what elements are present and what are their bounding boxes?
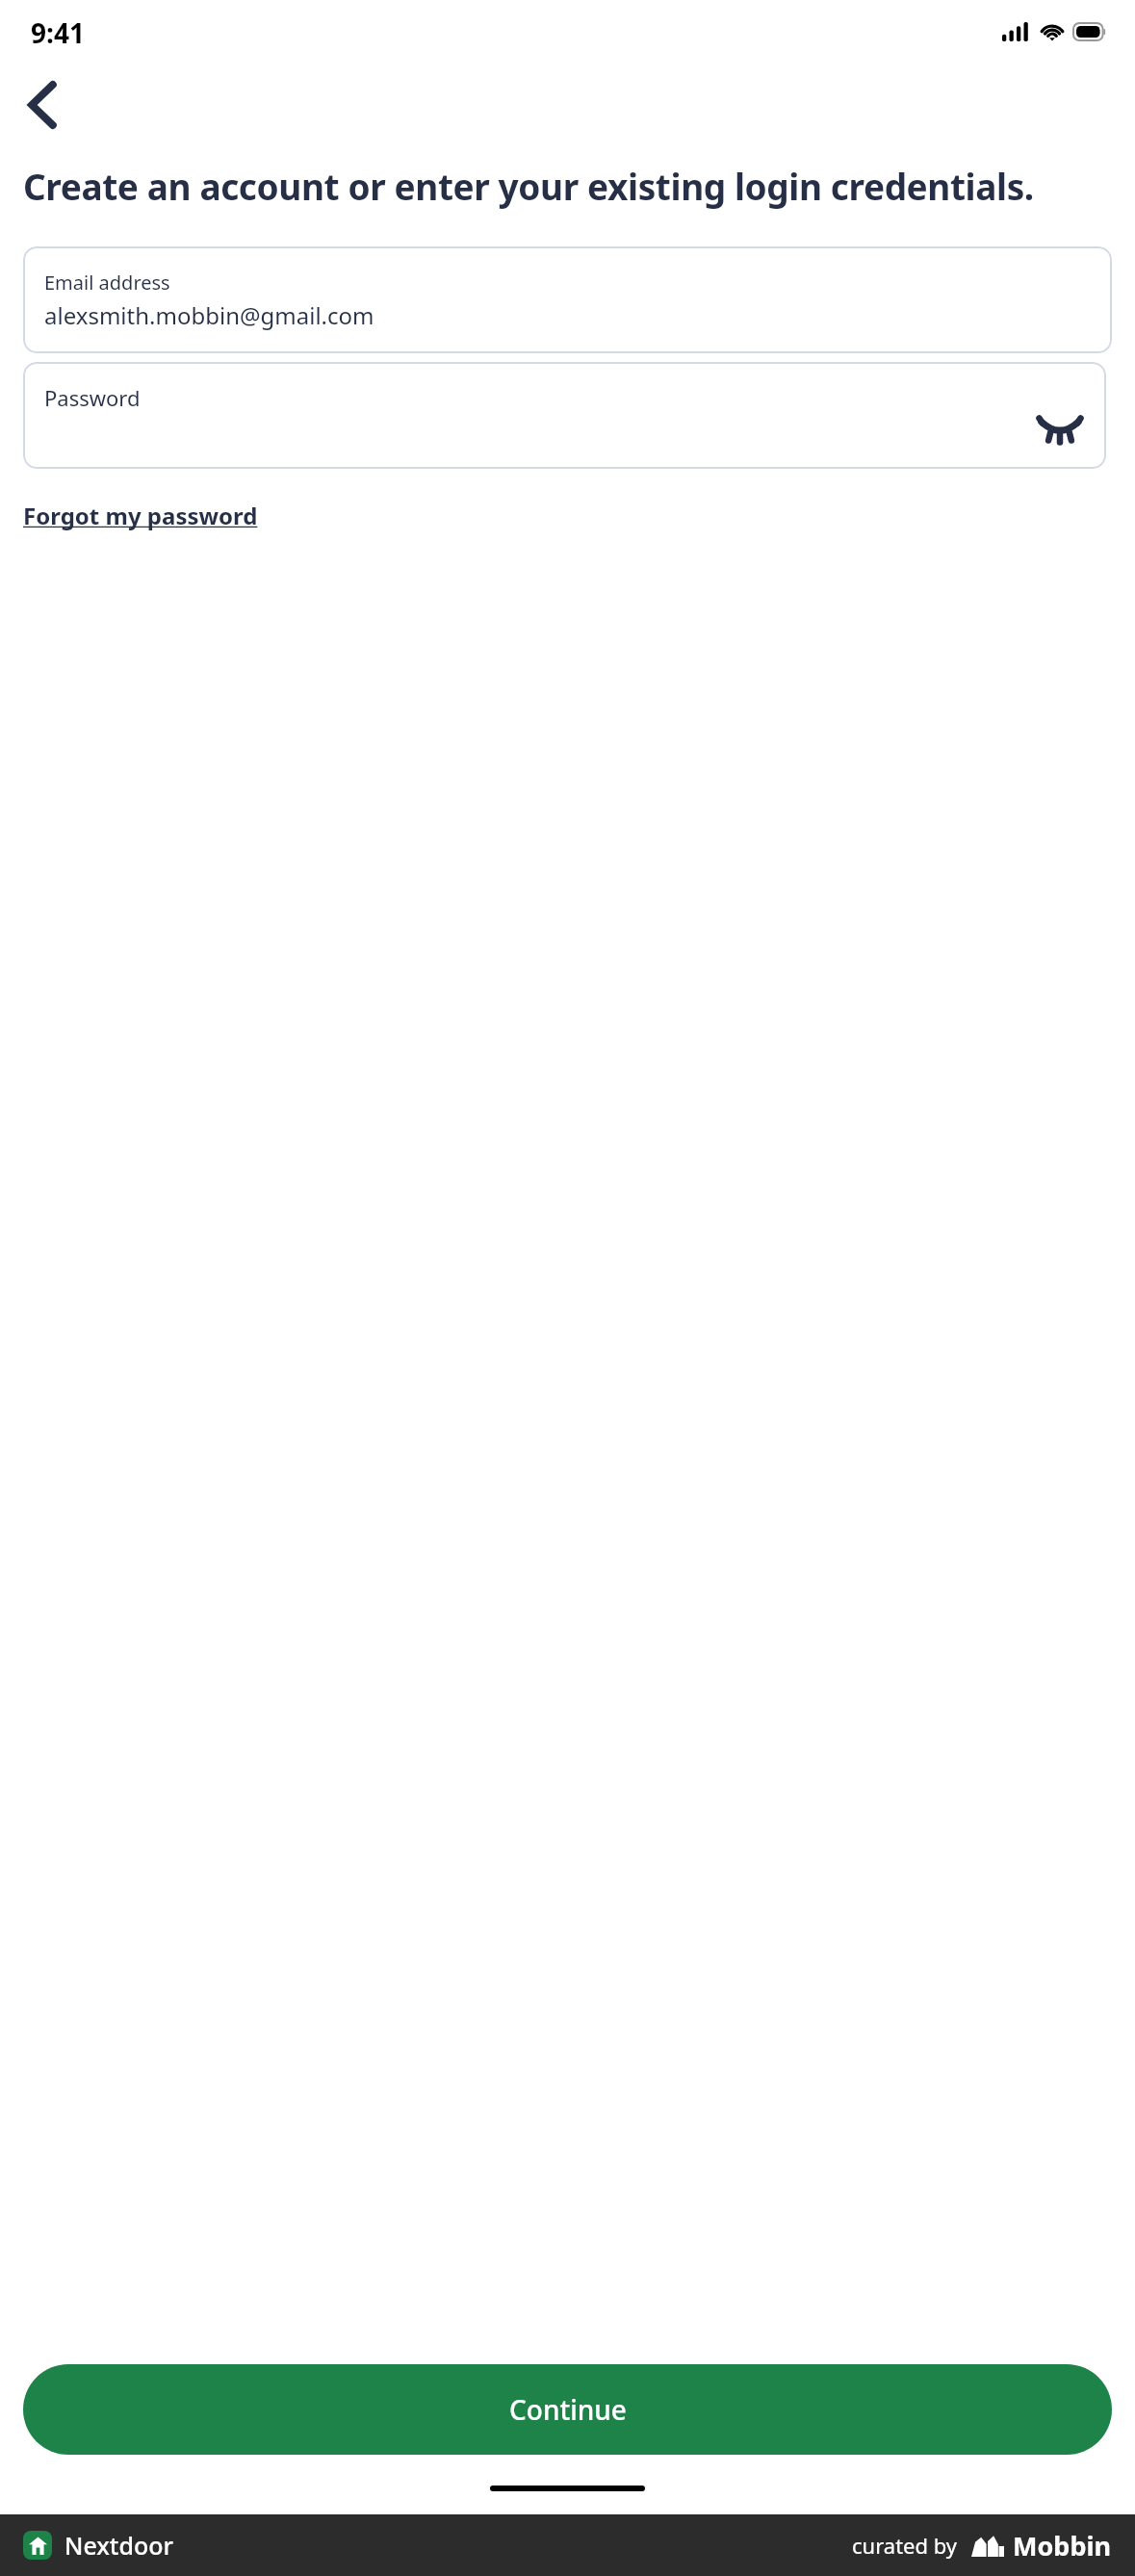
button[interactable]: Email address	[23, 246, 1112, 353]
staticText: Nextdoor	[64, 2529, 174, 2562]
staticText: Mobbin	[1013, 2528, 1112, 2563]
staticText: Password	[44, 383, 141, 412]
button[interactable]: Forgot my password	[23, 496, 258, 535]
button[interactable]: Password	[23, 362, 1106, 469]
staticText: curated by	[852, 2531, 958, 2560]
staticText: Forgot my password	[23, 500, 258, 531]
button[interactable]: Back	[8, 70, 77, 140]
staticText: alexsmith.mobbin@gmail.com	[44, 299, 374, 331]
staticText: 9:41	[31, 14, 85, 51]
button[interactable]: Continue	[23, 2364, 1112, 2455]
button[interactable]: Show password	[1033, 400, 1087, 454]
staticText: Email address	[44, 270, 170, 296]
staticText: Continue	[509, 2391, 627, 2428]
staticText: Create an account or enter your existing…	[23, 162, 1091, 210]
